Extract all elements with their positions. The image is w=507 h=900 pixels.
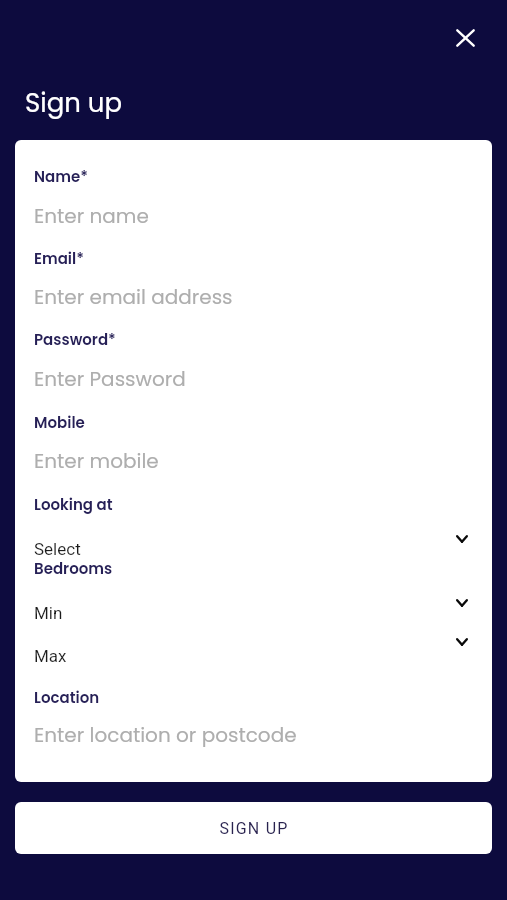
staticText: SIGN UP [219,819,289,838]
staticText: Min [34,603,63,623]
staticText: Enter name [34,202,149,230]
staticText: Mobile [34,412,85,433]
button[interactable]: Select [15,536,492,556]
staticText: Select [34,539,81,559]
staticText: Name* [34,166,88,187]
staticText: Email* [34,248,84,269]
staticText: Password* [34,329,116,350]
button[interactable]: Email* [15,246,492,313]
button[interactable]: Close [444,16,487,59]
staticText: Sign up [25,85,123,121]
staticText: Location [34,687,100,708]
staticText: Looking at [34,494,113,515]
button[interactable]: Password* [15,327,492,395]
button[interactable]: Min [15,600,492,640]
staticText: Bedrooms [34,558,113,579]
button[interactable]: Location [15,685,492,751]
button[interactable]: Max [15,643,492,683]
staticText: Enter location or postcode [34,721,297,749]
button[interactable]: Mobile [15,410,492,477]
staticText: Enter email address [34,283,233,311]
staticText: Enter Password [34,365,186,393]
button[interactable]: SIGN UP [15,802,492,854]
staticText: Max [34,646,67,666]
button[interactable]: Name* [15,164,492,232]
staticText: Enter mobile [34,447,159,475]
